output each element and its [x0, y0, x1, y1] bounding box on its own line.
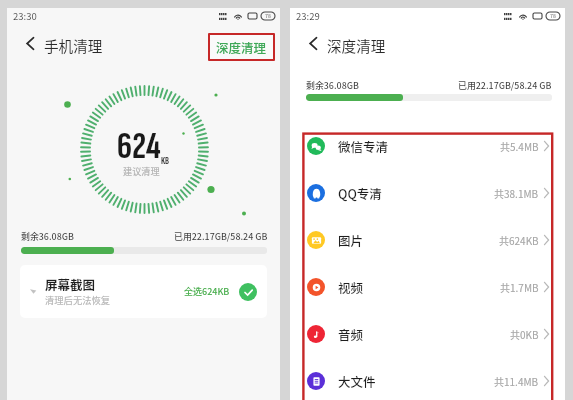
button[interactable]: 屏幕截图 — [20, 265, 267, 318]
staticText: 剩余36.08GB — [306, 79, 359, 92]
staticText: 图片 — [338, 231, 364, 249]
staticText: 78 — [265, 12, 271, 20]
staticText: 手机清理 — [44, 35, 103, 56]
button[interactable]: 微信专清 — [307, 122, 549, 169]
button[interactable]: 深度清理 — [208, 33, 275, 61]
staticText: 建议清理 — [123, 164, 160, 177]
staticText: QQ专清 — [338, 184, 382, 202]
button[interactable]: 音频 — [307, 310, 549, 357]
staticText: KB — [161, 155, 170, 167]
staticText: 全选624KB — [184, 285, 230, 298]
staticText: 共624KB — [499, 233, 539, 247]
staticText: 屏幕截图 — [45, 275, 96, 293]
button[interactable]: 图片 — [307, 216, 549, 263]
button[interactable]: Back — [21, 34, 39, 52]
staticText: 共5.4MB — [500, 139, 539, 153]
staticText: 微信专清 — [338, 137, 389, 155]
button[interactable]: Back — [304, 34, 322, 52]
staticText: 已用22.17GB/58.24 GB — [174, 230, 268, 243]
staticText: 共11.4MB — [494, 374, 539, 388]
staticText: 剩余36.08GB — [21, 230, 74, 243]
staticText: 大文件 — [338, 372, 376, 390]
staticText: 已用22.17GB/58.24 GB — [458, 79, 552, 92]
staticText: 78 — [550, 12, 556, 20]
staticText: 共38.1MB — [494, 186, 539, 200]
staticText: 共0KB — [510, 327, 539, 341]
button[interactable]: QQ专清 — [307, 169, 549, 216]
button[interactable]: 大文件 — [307, 357, 549, 400]
button[interactable]: 视频 — [307, 263, 549, 310]
staticText: 视频 — [338, 278, 364, 296]
staticText: 624 — [117, 124, 161, 170]
staticText: 音频 — [338, 325, 364, 343]
staticText: 清理后无法恢复 — [45, 293, 111, 306]
staticText: 深度清理 — [327, 35, 386, 56]
staticText: 23:29 — [296, 9, 320, 23]
staticText: 23:30 — [13, 9, 37, 23]
staticText: 深度清理 — [216, 38, 267, 56]
staticText: 共1.7MB — [500, 280, 539, 294]
